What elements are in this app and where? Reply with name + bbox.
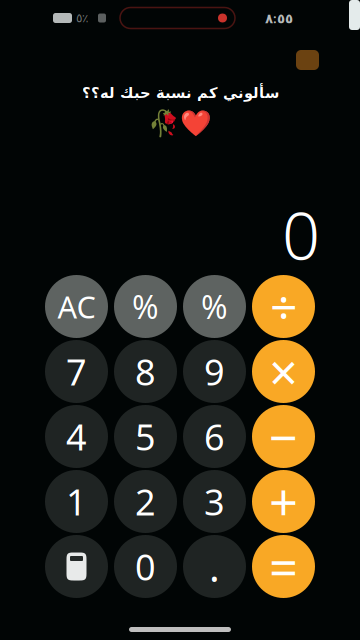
button[interactable]: Calculator modes: [45, 535, 108, 598]
staticText: ÷: [270, 275, 297, 338]
staticText: 1: [66, 478, 87, 525]
staticText: 9: [204, 348, 225, 395]
button[interactable]: .: [183, 535, 246, 598]
button[interactable]: 0: [114, 535, 177, 598]
button[interactable]: 4: [45, 405, 108, 468]
staticText: AC: [57, 286, 95, 327]
staticText: ٥٪: [76, 11, 88, 25]
staticText: 4: [66, 413, 87, 460]
button[interactable]: %: [183, 275, 246, 338]
button[interactable]: =: [252, 535, 315, 598]
button[interactable]: ×: [252, 340, 315, 403]
button[interactable]: AC: [45, 275, 108, 338]
button[interactable]: 8: [114, 340, 177, 403]
staticText: %: [132, 285, 159, 328]
staticText: ٨:٥٥: [265, 9, 293, 27]
button[interactable]: 5: [114, 405, 177, 468]
button[interactable]: +: [252, 470, 315, 533]
staticText: 5: [135, 413, 156, 460]
staticText: ×: [269, 338, 298, 405]
button[interactable]: %: [114, 275, 177, 338]
staticText: 3: [204, 478, 225, 525]
button[interactable]: 2: [114, 470, 177, 533]
button[interactable]: ÷: [252, 275, 315, 338]
staticText: 6: [204, 413, 225, 460]
staticText: =: [269, 533, 298, 600]
button[interactable]: 9: [183, 340, 246, 403]
button[interactable]: 7: [45, 340, 108, 403]
staticText: −: [269, 403, 298, 470]
staticText: %: [201, 285, 228, 328]
staticText: .: [209, 540, 220, 593]
staticText: +: [269, 468, 298, 535]
staticText: 0: [282, 190, 320, 278]
button[interactable]: 1: [45, 470, 108, 533]
button[interactable]: 6: [183, 405, 246, 468]
staticText: 2: [135, 478, 156, 525]
staticText: 7: [66, 348, 87, 395]
staticText: 🥀❤️: [148, 108, 212, 137]
staticText: 8: [135, 348, 156, 395]
staticText: سألوني كم نسبة حبك له؟؟: [81, 85, 278, 101]
staticText: 0: [135, 543, 156, 590]
button[interactable]: −: [252, 405, 315, 468]
button[interactable]: 3: [183, 470, 246, 533]
